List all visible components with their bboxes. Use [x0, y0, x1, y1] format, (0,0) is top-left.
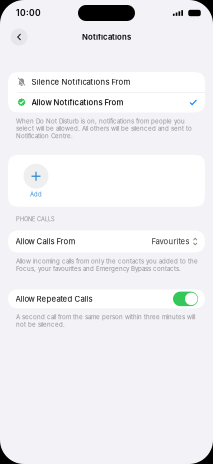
staticText: When Do Not Disturb is on, notifications…	[16, 117, 192, 140]
button[interactable]: Allow Notifications From	[8, 92, 205, 112]
button[interactable]: Add	[19, 164, 53, 198]
staticText: A second call from the same person withi…	[16, 313, 195, 328]
staticText: Add	[30, 191, 42, 198]
staticText: Allow incoming calls from only the conta…	[16, 257, 198, 272]
button[interactable]: Silence Notifications From	[8, 72, 205, 92]
button[interactable]: Allow Calls From	[8, 230, 205, 252]
staticText: 10:00	[16, 8, 41, 18]
button[interactable]: Allow Repeated Calls	[173, 291, 198, 306]
staticText: Notifications	[82, 32, 131, 42]
staticText: PHONE CALLS	[16, 216, 55, 223]
staticText: Allow Calls From	[15, 237, 75, 246]
staticText: Silence Notifications From	[32, 77, 131, 87]
button[interactable]: Back	[9, 27, 29, 47]
staticText: Allow Notifications From	[32, 98, 124, 107]
staticText: Allow Repeated Calls	[15, 294, 92, 304]
staticText: Favourites	[151, 237, 189, 246]
